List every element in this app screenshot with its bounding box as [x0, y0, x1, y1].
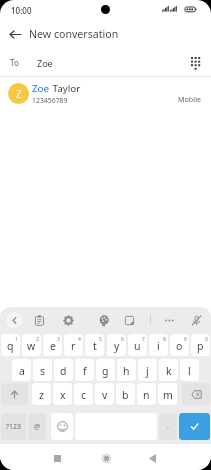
button[interactable]: b — [116, 383, 135, 405]
button[interactable]: g — [96, 359, 115, 381]
button[interactable]: More options — [159, 310, 179, 330]
staticText: h — [123, 364, 130, 378]
staticText: 6 — [121, 336, 124, 343]
staticText: j — [146, 364, 149, 378]
staticText: y — [114, 339, 120, 353]
staticText: k — [166, 364, 172, 378]
staticText: n — [143, 388, 150, 402]
staticText: 2 — [36, 336, 39, 343]
staticText: 3 — [57, 336, 60, 343]
staticText: g — [102, 364, 109, 378]
button[interactable]: ?123 — [1, 413, 26, 440]
button[interactable]: i — [149, 334, 168, 356]
staticText: x — [60, 388, 66, 402]
staticText: l — [188, 364, 191, 378]
button[interactable]: a — [12, 359, 31, 381]
button[interactable]: Stickers — [119, 310, 139, 330]
staticText: f — [83, 364, 87, 378]
button[interactable]: Backspace — [182, 383, 210, 405]
button[interactable]: s — [33, 359, 52, 381]
staticText: v — [102, 388, 108, 402]
button[interactable]: Emoji — [51, 413, 73, 440]
staticText: Zoe — [37, 57, 53, 69]
staticText: m — [163, 388, 173, 402]
button[interactable]: r — [64, 334, 83, 356]
button[interactable]: Voice input off — [186, 310, 206, 330]
button[interactable]: Clipboard — [29, 310, 49, 330]
button[interactable]: q — [1, 334, 20, 356]
button[interactable]: w — [22, 334, 41, 356]
staticText: s — [40, 364, 46, 378]
button[interactable]: o — [170, 334, 189, 356]
button[interactable]: Dialpad — [184, 51, 208, 75]
button[interactable]: d — [54, 359, 73, 381]
staticText: d — [60, 364, 67, 378]
button[interactable]: Z — [0, 78, 211, 108]
button[interactable]: k — [159, 359, 178, 381]
staticText: w — [27, 339, 36, 353]
staticText: b — [122, 388, 129, 402]
staticText: u — [134, 339, 141, 353]
button[interactable]: Shift — [1, 383, 28, 405]
staticText: 8 — [163, 336, 166, 343]
staticText: Mobile — [178, 94, 202, 104]
staticText: 10:00 — [11, 5, 32, 16]
staticText: r — [71, 339, 76, 353]
button[interactable]: t — [85, 334, 104, 356]
button[interactable]: y — [107, 334, 126, 356]
button[interactable]: h — [117, 359, 136, 381]
button[interactable]: @ — [28, 413, 46, 440]
staticText: a — [19, 364, 25, 378]
button[interactable]: u — [128, 334, 147, 356]
button[interactable]: x — [53, 383, 72, 405]
button[interactable]: Back — [3, 22, 27, 46]
button[interactable]: Hide keyboard — [6, 312, 22, 328]
button[interactable]: l — [180, 359, 199, 381]
staticText: 9 — [184, 336, 187, 343]
button[interactable]: p — [191, 334, 210, 356]
staticText: ?123 — [6, 422, 22, 432]
button[interactable]: j — [138, 359, 157, 381]
staticText: 1 — [15, 336, 18, 343]
staticText: @ — [34, 422, 41, 432]
staticText: c — [81, 388, 87, 402]
button[interactable]: v — [95, 383, 114, 405]
button[interactable]: e — [43, 334, 62, 356]
staticText: z — [39, 388, 44, 402]
staticText: e — [50, 339, 56, 353]
button[interactable]: Keyboard settings — [58, 310, 78, 330]
staticText: o — [176, 339, 183, 353]
staticText: Taylor — [50, 82, 81, 95]
button[interactable]: n — [137, 383, 156, 405]
staticText: 123456789 — [32, 96, 68, 105]
staticText: 7 — [142, 336, 145, 343]
button[interactable]: f — [75, 359, 94, 381]
staticText: p — [197, 339, 204, 353]
staticText: Zoe — [32, 82, 50, 95]
staticText: 5 — [99, 336, 102, 343]
staticText: New conversation — [29, 27, 119, 41]
staticText: To — [10, 57, 19, 68]
button[interactable]: z — [32, 383, 51, 405]
staticText: 0 — [205, 336, 208, 343]
button[interactable]: m — [158, 383, 177, 405]
staticText: q — [7, 339, 14, 353]
staticText: t — [93, 339, 97, 353]
staticText: i — [157, 339, 160, 353]
button[interactable]: c — [74, 383, 93, 405]
staticText: . — [167, 422, 169, 432]
staticText: 4 — [78, 336, 81, 343]
button[interactable]: Send — [179, 413, 210, 440]
button[interactable]: Recent apps — [46, 447, 68, 469]
staticText: Z — [16, 87, 22, 101]
button[interactable]: Home — [95, 447, 117, 469]
button[interactable]: Back — [141, 447, 163, 469]
button[interactable]: Theme — [94, 310, 114, 330]
